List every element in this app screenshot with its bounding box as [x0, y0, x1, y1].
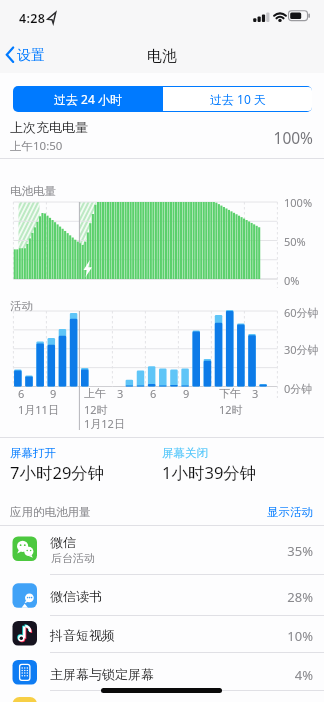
staticText: 6: [150, 386, 157, 401]
button[interactable]: [0, 653, 324, 691]
staticText: 50%: [284, 234, 306, 249]
staticText: 12时: [219, 402, 243, 417]
staticText: 电池: [0, 47, 324, 66]
staticText: 微信读书: [50, 588, 102, 604]
staticText: 0%: [284, 273, 300, 288]
staticText: 4:28: [19, 10, 46, 27]
staticText: 1小时39分钟: [162, 461, 257, 484]
staticText: 6: [18, 386, 25, 401]
staticText: 上次充电电量: [10, 119, 88, 135]
staticText: 3: [117, 386, 124, 401]
staticText: 9: [183, 386, 190, 401]
staticText: 100%: [284, 195, 313, 210]
button[interactable]: [0, 575, 324, 615]
staticText: 35%: [200, 542, 313, 560]
staticText: 过去 24 小时: [54, 91, 122, 107]
staticText: 抖音短视频: [50, 627, 115, 643]
button[interactable]: [0, 525, 324, 575]
staticText: 7小时29分钟: [10, 461, 105, 484]
staticText: 12时: [84, 402, 108, 417]
staticText: 60分钟: [284, 305, 319, 320]
staticText: 3: [252, 386, 259, 401]
staticText: 28%: [200, 588, 313, 606]
staticText: 显示活动: [240, 505, 313, 519]
staticText: 电池电量: [10, 184, 56, 198]
staticText: 屏幕打开: [10, 446, 56, 460]
staticText: 4%: [200, 666, 313, 684]
staticText: 0分钟: [284, 381, 313, 396]
staticText: 屏幕关闭: [162, 446, 208, 460]
staticText: 10%: [200, 627, 313, 645]
staticText: 上午: [84, 386, 106, 400]
staticText: 9: [50, 386, 57, 401]
staticText: 设置: [17, 47, 45, 65]
staticText: 微信: [50, 534, 76, 550]
staticText: 后台活动: [51, 551, 95, 565]
staticText: 上午10:50: [10, 138, 63, 154]
staticText: 1月11日: [18, 402, 59, 417]
staticText: 主屏幕与锁定屏幕: [50, 666, 154, 682]
staticText: 活动: [10, 299, 33, 313]
staticText: 100%: [200, 127, 313, 148]
button[interactable]: [0, 615, 324, 653]
button[interactable]: [0, 40, 60, 70]
staticText: 1月12日: [84, 416, 125, 431]
staticText: 应用的电池用量: [10, 505, 91, 519]
staticText: 过去 10 天: [210, 91, 266, 107]
staticText: 下午: [219, 386, 241, 400]
button[interactable]: 显示活动: [240, 500, 313, 520]
button[interactable]: [163, 87, 312, 111]
button[interactable]: 过去 24 小时: [13, 86, 163, 112]
staticText: 30分钟: [284, 342, 319, 357]
